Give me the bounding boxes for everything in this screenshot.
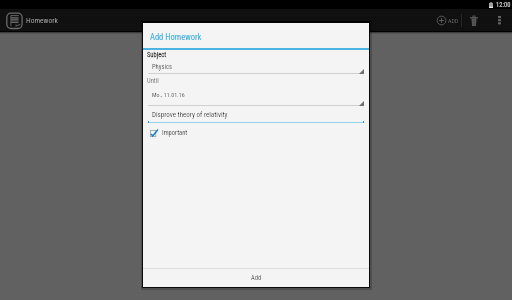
staticText: ADD (448, 17, 459, 24)
staticText: Add Homework (150, 32, 202, 42)
staticText: 12:00 (496, 1, 511, 9)
button[interactable]: Physics (148, 63, 364, 74)
staticText: Subject (147, 51, 167, 59)
button[interactable]: Add Homework (143, 23, 369, 48)
button[interactable]: Add (143, 269, 369, 287)
button[interactable]: Delete (464, 10, 483, 32)
button[interactable]: Mo., 11.01.16 (148, 91, 364, 106)
button[interactable]: More options (491, 9, 508, 31)
staticText: Until (147, 77, 159, 85)
staticText: Physics (152, 63, 172, 71)
button[interactable]: ADD (437, 9, 459, 31)
staticText: Homework (26, 16, 58, 25)
button[interactable]: Important (150, 129, 188, 137)
staticText: Important (162, 129, 188, 137)
staticText: Mo., 11.01.16 (152, 91, 185, 98)
button[interactable]: Disprove theory of relativity (148, 111, 364, 123)
staticText: Disprove theory of relativity (152, 111, 228, 119)
staticText: Add (251, 274, 262, 282)
